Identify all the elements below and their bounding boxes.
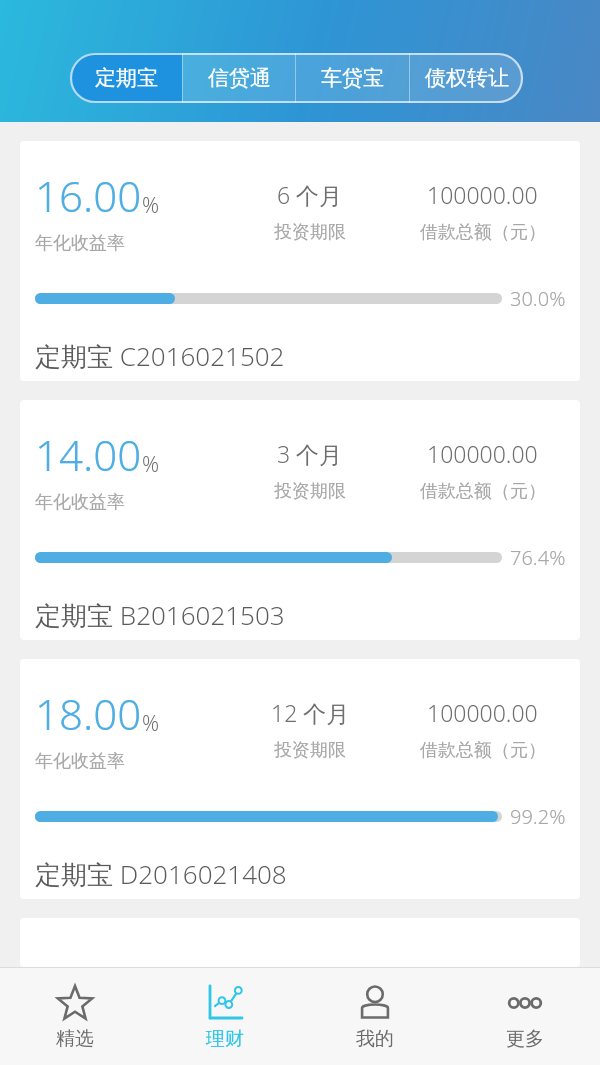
staticText: 定期宝 C2016021502 <box>35 338 285 374</box>
staticText: 投资期限 <box>274 480 346 503</box>
staticText: 14.00 <box>35 426 142 483</box>
button[interactable]: 信贷通 <box>183 53 295 103</box>
staticText: % <box>142 191 160 220</box>
staticText: % <box>142 450 160 479</box>
staticText: 理财 <box>206 1027 244 1051</box>
staticText: 年化收益率 <box>35 491 125 514</box>
button[interactable]: 车贷宝 <box>296 53 409 103</box>
staticText: 借款总额（元） <box>420 739 546 762</box>
button[interactable]: 18.00 <box>20 659 580 899</box>
staticText: 投资期限 <box>274 739 346 762</box>
staticText: 车贷宝 <box>321 65 384 91</box>
staticText: 定期宝 D2016021408 <box>35 856 287 892</box>
staticText: 30.0% <box>510 285 566 312</box>
staticText: 定期宝 <box>95 65 158 91</box>
staticText: 6 个月 <box>277 179 343 210</box>
staticText: 99.2% <box>510 803 566 830</box>
staticText: 我的 <box>356 1027 394 1051</box>
staticText: 精选 <box>56 1027 94 1051</box>
staticText: 100000.00 <box>427 697 538 728</box>
staticText: 信贷通 <box>208 65 271 91</box>
staticText: % <box>142 709 160 738</box>
staticText: 100000.00 <box>427 179 538 210</box>
button[interactable]: 16.00 <box>20 141 580 381</box>
button[interactable]: 我的 <box>300 968 450 1065</box>
staticText: 18.00 <box>35 685 142 742</box>
staticText: 定期宝 B2016021503 <box>35 597 285 633</box>
staticText: 3 个月 <box>277 438 343 469</box>
staticText: 100000.00 <box>427 438 538 469</box>
button[interactable]: 债权转让 <box>410 53 523 103</box>
staticText: 76.4% <box>510 544 566 571</box>
button[interactable]: 定期宝 <box>70 53 182 103</box>
staticText: 12 个月 <box>271 697 350 728</box>
staticText: 投资期限 <box>274 221 346 244</box>
staticText: 更多 <box>506 1027 544 1051</box>
button[interactable]: 精选 <box>0 968 150 1065</box>
staticText: 年化收益率 <box>35 750 125 773</box>
staticText: 债权转让 <box>425 65 509 91</box>
staticText: 年化收益率 <box>35 232 125 255</box>
button[interactable]: 理财 <box>150 968 300 1065</box>
staticText: 借款总额（元） <box>420 221 546 244</box>
staticText: 16.00 <box>35 167 142 224</box>
staticText: 借款总额（元） <box>420 480 546 503</box>
button[interactable]: 14.00 <box>20 400 580 640</box>
button[interactable]: 更多 <box>450 968 600 1065</box>
